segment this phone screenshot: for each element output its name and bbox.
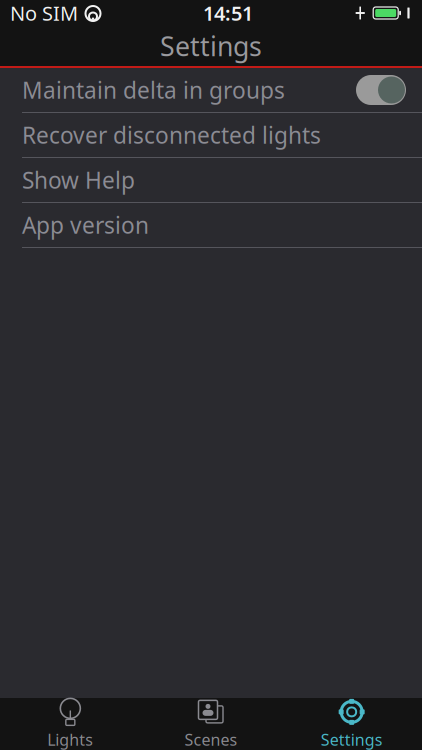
button[interactable]: App version [0, 203, 422, 248]
button[interactable]: Show Help [0, 158, 422, 203]
staticText: Scenes [184, 729, 237, 750]
staticText: Settings [321, 729, 383, 750]
staticText: Lights [47, 729, 93, 750]
staticText: No SIM [10, 0, 78, 26]
staticText: Maintain delta in groups [22, 75, 285, 105]
button[interactable]: Maintain delta in groups [0, 68, 422, 113]
button[interactable]: Scenes [141, 698, 281, 750]
button[interactable]: Lights [0, 698, 141, 750]
button[interactable]: Settings [281, 698, 422, 750]
button[interactable]: Recover disconnected lights [0, 113, 422, 158]
staticText: Show Help [22, 165, 135, 195]
staticText: Settings [160, 28, 262, 64]
staticText: Recover disconnected lights [22, 120, 321, 150]
staticText: App version [22, 210, 149, 240]
staticText: 14:51 [203, 0, 253, 26]
